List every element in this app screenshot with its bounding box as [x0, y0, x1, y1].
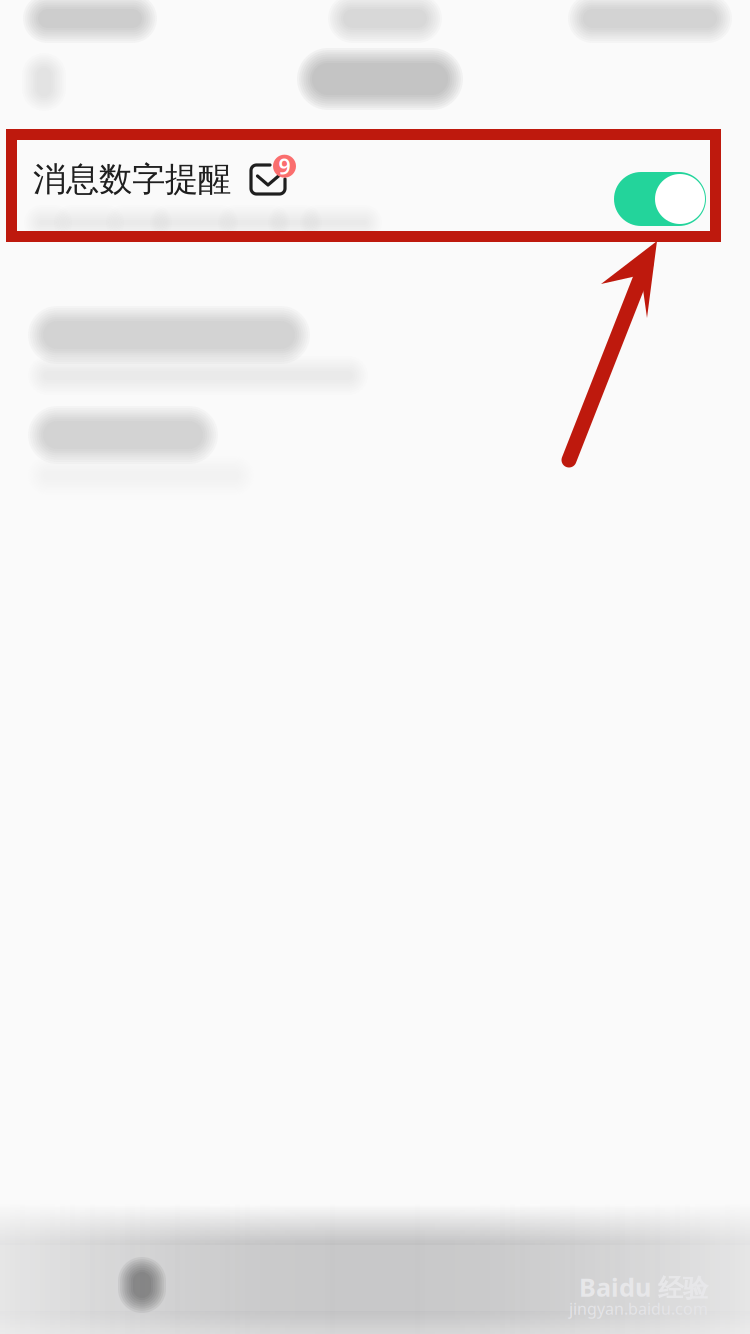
button[interactable]: 消息数字提醒	[0, 129, 750, 242]
button[interactable]: 开	[614, 172, 706, 226]
button[interactable]	[0, 298, 750, 398]
staticText: Baidu 经验	[579, 1270, 708, 1304]
button[interactable]	[0, 398, 750, 498]
staticText: jingyan.baidu.com	[569, 1298, 708, 1319]
staticText: 9	[278, 152, 290, 180]
staticText: 消息数字提醒	[33, 159, 231, 200]
